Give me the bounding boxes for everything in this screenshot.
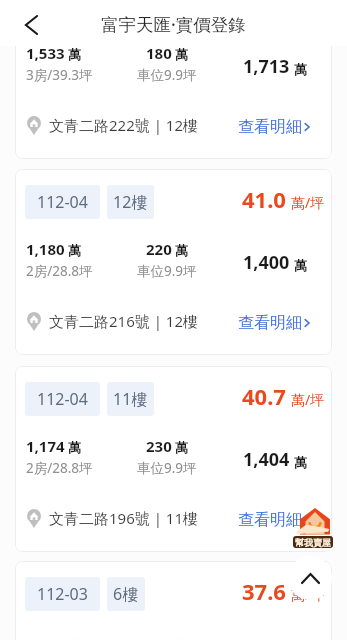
staticText: 1,713 bbox=[243, 54, 290, 79]
staticText: 12樓 bbox=[113, 0, 148, 17]
staticText: 3房/39.3坪 bbox=[26, 66, 93, 84]
button[interactable]: 查看明細 bbox=[238, 510, 312, 530]
staticText: 1,180 bbox=[26, 239, 65, 259]
staticText: 萬/坪 bbox=[291, 193, 325, 212]
staticText: 230 bbox=[146, 436, 172, 456]
staticText: 萬 bbox=[175, 242, 188, 258]
button[interactable]: 112-04 bbox=[15, 0, 332, 159]
staticText: 富宇天匯·實價登錄 bbox=[101, 12, 246, 36]
staticText: 112-04 bbox=[37, 388, 88, 410]
staticText: 1,533 bbox=[26, 43, 65, 63]
staticText: 萬 bbox=[175, 46, 188, 62]
staticText: 112-04 bbox=[37, 0, 88, 17]
button[interactable]: Scroll to top bbox=[288, 556, 332, 600]
staticText: 2房/28.8坪 bbox=[26, 459, 93, 477]
staticText: 萬/坪 bbox=[291, 585, 325, 604]
staticText: 文青二路196號 | 11樓 bbox=[49, 508, 198, 528]
staticText: 1,400 bbox=[243, 250, 290, 275]
button[interactable]: 查看明細 bbox=[238, 313, 312, 333]
staticText: 幫我賣屋 bbox=[295, 537, 331, 548]
staticText: 40.7 bbox=[242, 381, 286, 411]
staticText: 220 bbox=[146, 239, 172, 259]
button[interactable]: Back bbox=[15, 9, 47, 41]
staticText: 文青二路222號 | 12樓 bbox=[49, 115, 198, 135]
staticText: 文青二路216號 | 12樓 bbox=[49, 311, 198, 331]
staticText: 萬 bbox=[175, 439, 188, 455]
staticText: 11樓 bbox=[113, 388, 148, 410]
staticText: 萬 bbox=[294, 61, 307, 77]
staticText: 112-03 bbox=[37, 583, 88, 605]
staticText: 萬 bbox=[68, 242, 81, 258]
button[interactable]: 幫我賣屋 bbox=[292, 506, 337, 548]
staticText: 1,404 bbox=[243, 447, 290, 472]
staticText: 12樓 bbox=[113, 191, 148, 213]
staticText: 萬/坪 bbox=[291, 390, 325, 409]
staticText: 車位9.9坪 bbox=[137, 262, 197, 280]
staticText: 37.6 bbox=[242, 576, 286, 606]
staticText: 萬 bbox=[68, 439, 81, 455]
staticText: 查看明細 bbox=[238, 117, 302, 137]
staticText: 2房/28.8坪 bbox=[26, 262, 93, 280]
staticText: 萬 bbox=[294, 454, 307, 470]
staticText: 萬 bbox=[294, 257, 307, 273]
staticText: 41.0 bbox=[242, 184, 286, 214]
button[interactable]: 112-03 bbox=[15, 561, 332, 640]
staticText: 112-04 bbox=[37, 191, 88, 213]
staticText: 查看明細 bbox=[238, 510, 302, 530]
staticText: 查看明細 bbox=[238, 313, 302, 333]
staticText: 萬 bbox=[68, 46, 81, 62]
staticText: 6樓 bbox=[113, 583, 139, 605]
staticText: 180 bbox=[146, 43, 172, 63]
button[interactable]: 查看明細 bbox=[238, 117, 312, 137]
staticText: 1,174 bbox=[26, 436, 65, 456]
staticText: 車位9.9坪 bbox=[137, 459, 197, 477]
button[interactable]: 112-04 bbox=[15, 169, 332, 355]
staticText: 車位9.9坪 bbox=[137, 66, 197, 84]
button[interactable]: 112-04 bbox=[15, 366, 332, 552]
